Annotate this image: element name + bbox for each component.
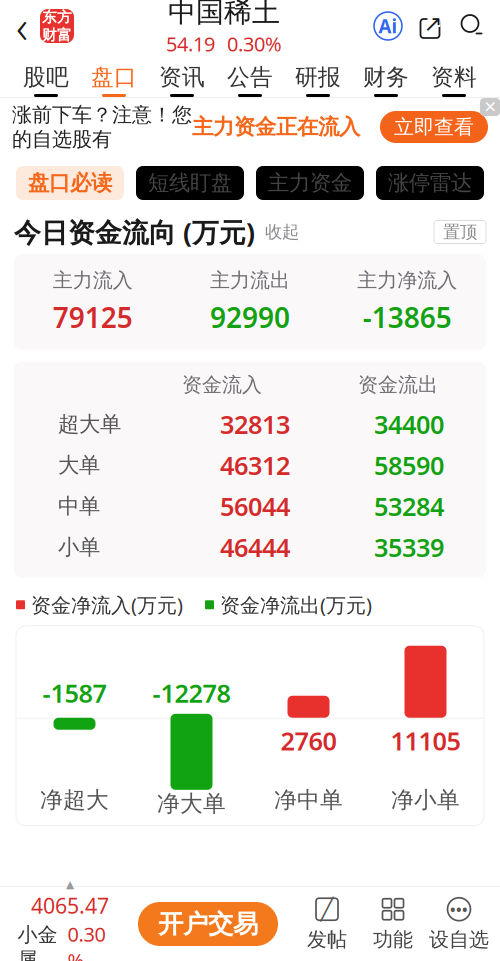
button[interactable]: 主力资金 xyxy=(256,166,364,200)
staticText: 35339 xyxy=(374,530,444,564)
staticText: 资金流出 xyxy=(358,372,438,397)
staticText: 大单 xyxy=(58,452,100,478)
button[interactable]: Close ad xyxy=(480,98,500,116)
button[interactable]: 资料 xyxy=(420,52,488,97)
staticText: 今日资金流向 (万元) xyxy=(14,214,255,250)
staticText: 中单 xyxy=(58,493,100,519)
staticText: 34400 xyxy=(374,407,444,441)
staticText: 财务 xyxy=(363,63,409,91)
staticText: ✕ xyxy=(483,98,496,116)
staticText: 盘口 xyxy=(91,63,137,91)
button[interactable]: 资讯 xyxy=(148,52,216,97)
button[interactable]: 财务 xyxy=(352,52,420,97)
button[interactable]: ••• xyxy=(426,896,492,952)
staticText: 11105 xyxy=(390,629,460,662)
staticText: 盘口必读 xyxy=(28,170,112,196)
button[interactable]: 立即查看 xyxy=(380,111,488,143)
staticText: 2760 xyxy=(280,679,336,712)
button[interactable]: 公告 xyxy=(216,52,284,97)
button[interactable]: ╱ xyxy=(294,896,360,952)
staticText: 主力流出 xyxy=(210,268,290,293)
staticText: ╱ xyxy=(320,897,333,921)
staticText: 净超大 xyxy=(40,786,109,814)
staticText: Ai xyxy=(378,14,397,38)
staticText: 资金净流出(万元) xyxy=(220,591,372,618)
staticText: 研报 xyxy=(295,63,341,91)
button[interactable]: ▲ xyxy=(8,878,132,961)
staticText: 资金流入 xyxy=(182,372,262,397)
staticText: 0.30% xyxy=(227,30,282,57)
staticText: 发帖 xyxy=(307,927,347,952)
button[interactable]: 股吧 xyxy=(12,52,80,97)
staticText: 11105 xyxy=(390,724,460,757)
staticText: 中国稀土 xyxy=(168,0,280,29)
button[interactable]: 收起 xyxy=(265,221,299,243)
button[interactable]: 盘口 xyxy=(80,52,148,97)
staticText: 主力净流入 xyxy=(357,268,457,293)
staticText: 净小单 xyxy=(391,786,460,814)
staticText: 0.30% xyxy=(67,921,105,961)
staticText: 53284 xyxy=(374,489,444,523)
button[interactable]: Share xyxy=(416,12,444,40)
staticText: 58590 xyxy=(374,448,444,482)
staticText: 短线盯盘 xyxy=(148,170,232,196)
staticText: 资金净流入(万元) xyxy=(31,591,183,618)
button[interactable]: 涨停雷达 xyxy=(376,166,484,200)
staticText: 净大单 xyxy=(157,790,226,818)
staticText: 资讯 xyxy=(159,63,205,91)
staticText: 超大单 xyxy=(58,411,121,437)
staticText: 92990 xyxy=(210,299,290,336)
staticText: 小单 xyxy=(58,534,100,560)
staticText: 54.19 xyxy=(166,30,215,57)
staticText: 56044 xyxy=(220,489,290,523)
button[interactable]: Search xyxy=(458,12,486,40)
staticText: ▲ xyxy=(66,878,74,890)
button[interactable]: Back xyxy=(4,4,40,48)
staticText: 收起 xyxy=(265,221,299,243)
staticText: 46444 xyxy=(220,530,290,564)
staticText: -12278 xyxy=(152,676,230,710)
staticText: 主力资金正在流入 xyxy=(192,114,360,140)
button[interactable]: 功能 xyxy=(360,896,426,952)
staticText: 立即查看 xyxy=(394,115,474,139)
staticText: 设自选 xyxy=(429,927,489,952)
button[interactable]: 盘口必读 xyxy=(16,166,124,200)
button[interactable]: East Money xyxy=(40,9,74,43)
staticText: 股吧 xyxy=(23,63,69,91)
button[interactable]: 研报 xyxy=(284,52,352,97)
button[interactable]: AI Assistant xyxy=(374,12,402,40)
staticText: -1587 xyxy=(42,676,106,710)
button[interactable]: 短线盯盘 xyxy=(136,166,244,200)
staticText: 东方 财富 xyxy=(42,8,72,44)
staticText: 32813 xyxy=(220,407,290,441)
staticText: 开户交易 xyxy=(158,908,258,939)
button[interactable]: 置顶 xyxy=(434,220,486,243)
staticText: -13865 xyxy=(363,299,452,336)
staticText: ↗ xyxy=(423,11,442,36)
staticText: 主力资金 xyxy=(268,170,352,196)
staticText: 79125 xyxy=(53,299,133,336)
button[interactable]: 开户交易 xyxy=(138,902,278,946)
staticText: 46312 xyxy=(220,448,290,482)
staticText: 资料 xyxy=(431,63,477,91)
staticText: 小金属 xyxy=(17,923,57,961)
staticText: ••• xyxy=(450,899,468,919)
staticText: 4065.47 xyxy=(31,891,109,920)
staticText: 公告 xyxy=(227,63,273,91)
staticText: 涨停雷达 xyxy=(388,170,472,196)
staticText: 置顶 xyxy=(443,221,477,243)
staticText: 功能 xyxy=(373,927,413,952)
staticText: 净中单 xyxy=(274,786,343,814)
staticText: 涨前下车？注意！您的自选股有 xyxy=(12,102,192,151)
staticText: ‹ xyxy=(16,0,28,56)
staticText: 主力流入 xyxy=(53,268,133,293)
staticText: 2760 xyxy=(280,724,336,757)
